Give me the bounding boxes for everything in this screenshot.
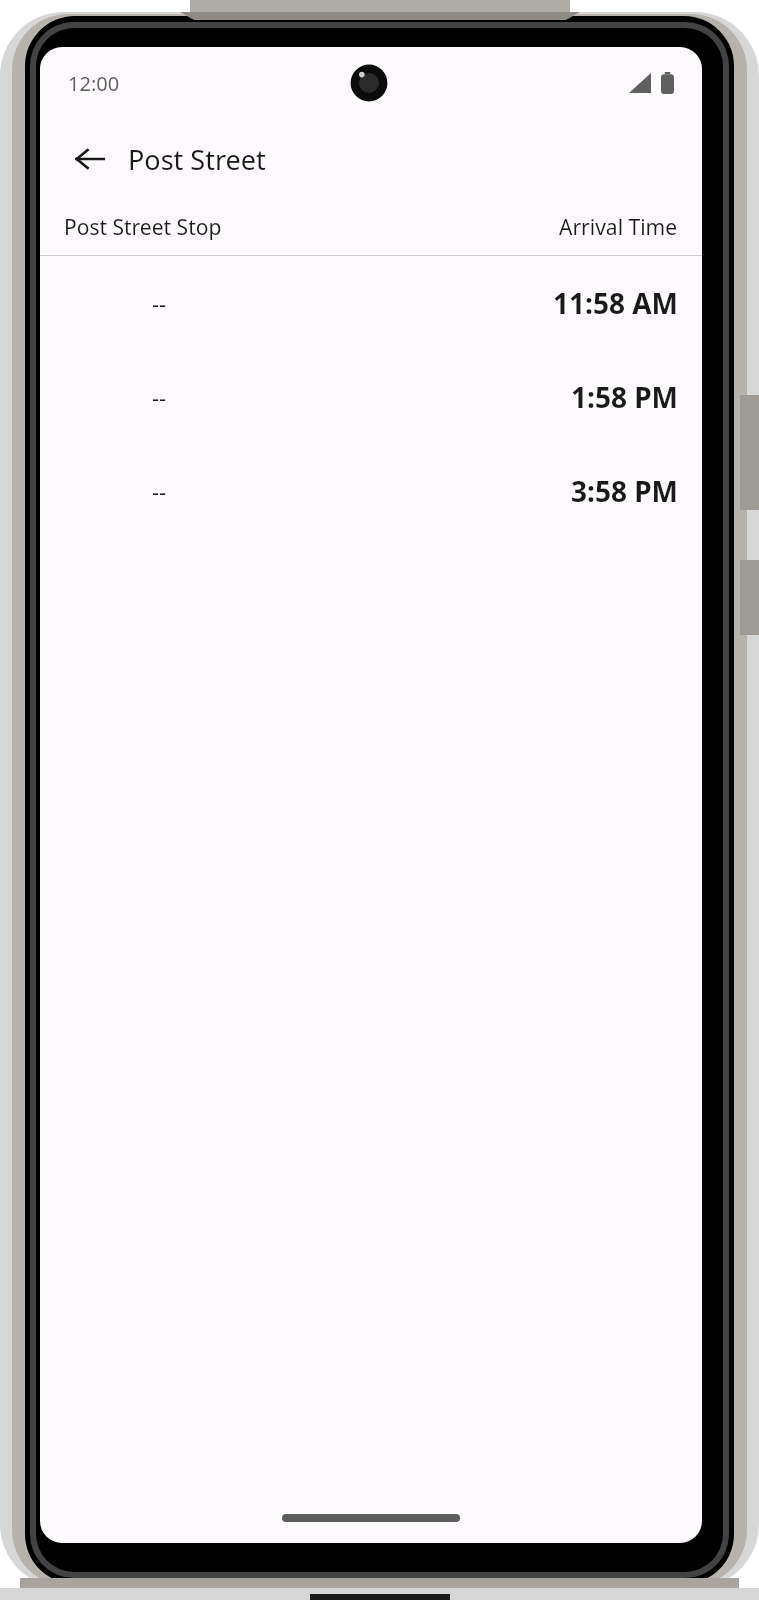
staticText: Post Street — [128, 141, 266, 178]
staticText: Post Street Stop — [64, 213, 222, 242]
staticText: 12:00 — [68, 70, 120, 97]
button[interactable]: -- — [40, 350, 702, 444]
staticText: 11:58 AM — [553, 284, 678, 322]
staticText: -- — [152, 476, 167, 506]
staticText: -- — [152, 288, 167, 318]
staticText: 1:58 PM — [571, 378, 678, 416]
button[interactable]: Back — [66, 135, 114, 183]
button[interactable]: -- — [40, 444, 702, 538]
staticText: 3:58 PM — [571, 472, 678, 510]
staticText: -- — [152, 382, 167, 412]
button[interactable]: -- — [40, 256, 702, 350]
staticText: Arrival Time — [559, 213, 678, 242]
